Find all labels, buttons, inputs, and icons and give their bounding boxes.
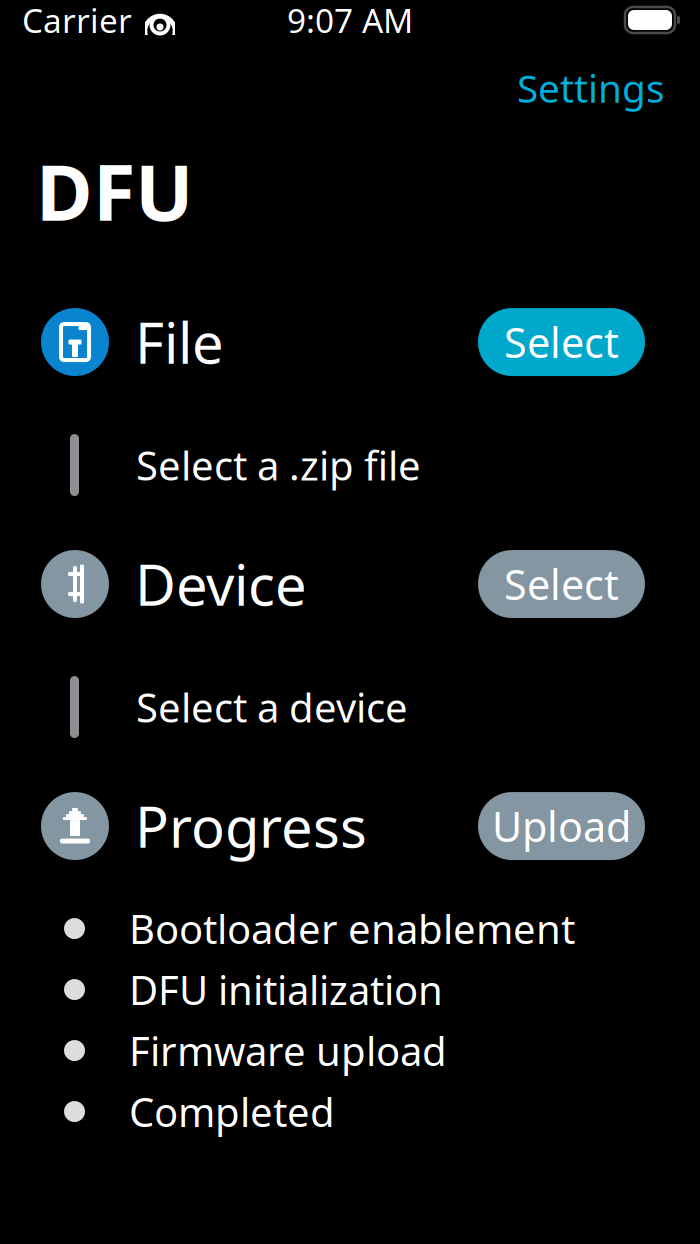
staticText: File — [135, 305, 224, 379]
staticText: Select — [504, 315, 619, 369]
staticText: Carrier — [22, 0, 132, 42]
staticText: Completed — [129, 1085, 335, 1138]
staticText: Firmware upload — [129, 1024, 447, 1077]
staticText: DFU initialization — [129, 963, 443, 1016]
button[interactable]: Select — [478, 308, 645, 376]
staticText: Select a .zip file — [136, 438, 421, 492]
staticText: Upload — [492, 799, 631, 853]
staticText: Select a device — [136, 680, 408, 734]
button[interactable]: Settings — [503, 54, 679, 121]
staticText: 9:07 AM — [287, 0, 413, 42]
staticText: Device — [135, 547, 307, 621]
button[interactable]: Upload — [478, 792, 645, 860]
staticText: Settings — [517, 62, 665, 113]
staticText: Bootloader enablement — [129, 902, 575, 955]
staticText: DFU — [36, 139, 193, 242]
staticText: Progress — [135, 789, 367, 863]
staticText: Select — [504, 557, 619, 611]
button[interactable]: Select — [478, 550, 645, 618]
